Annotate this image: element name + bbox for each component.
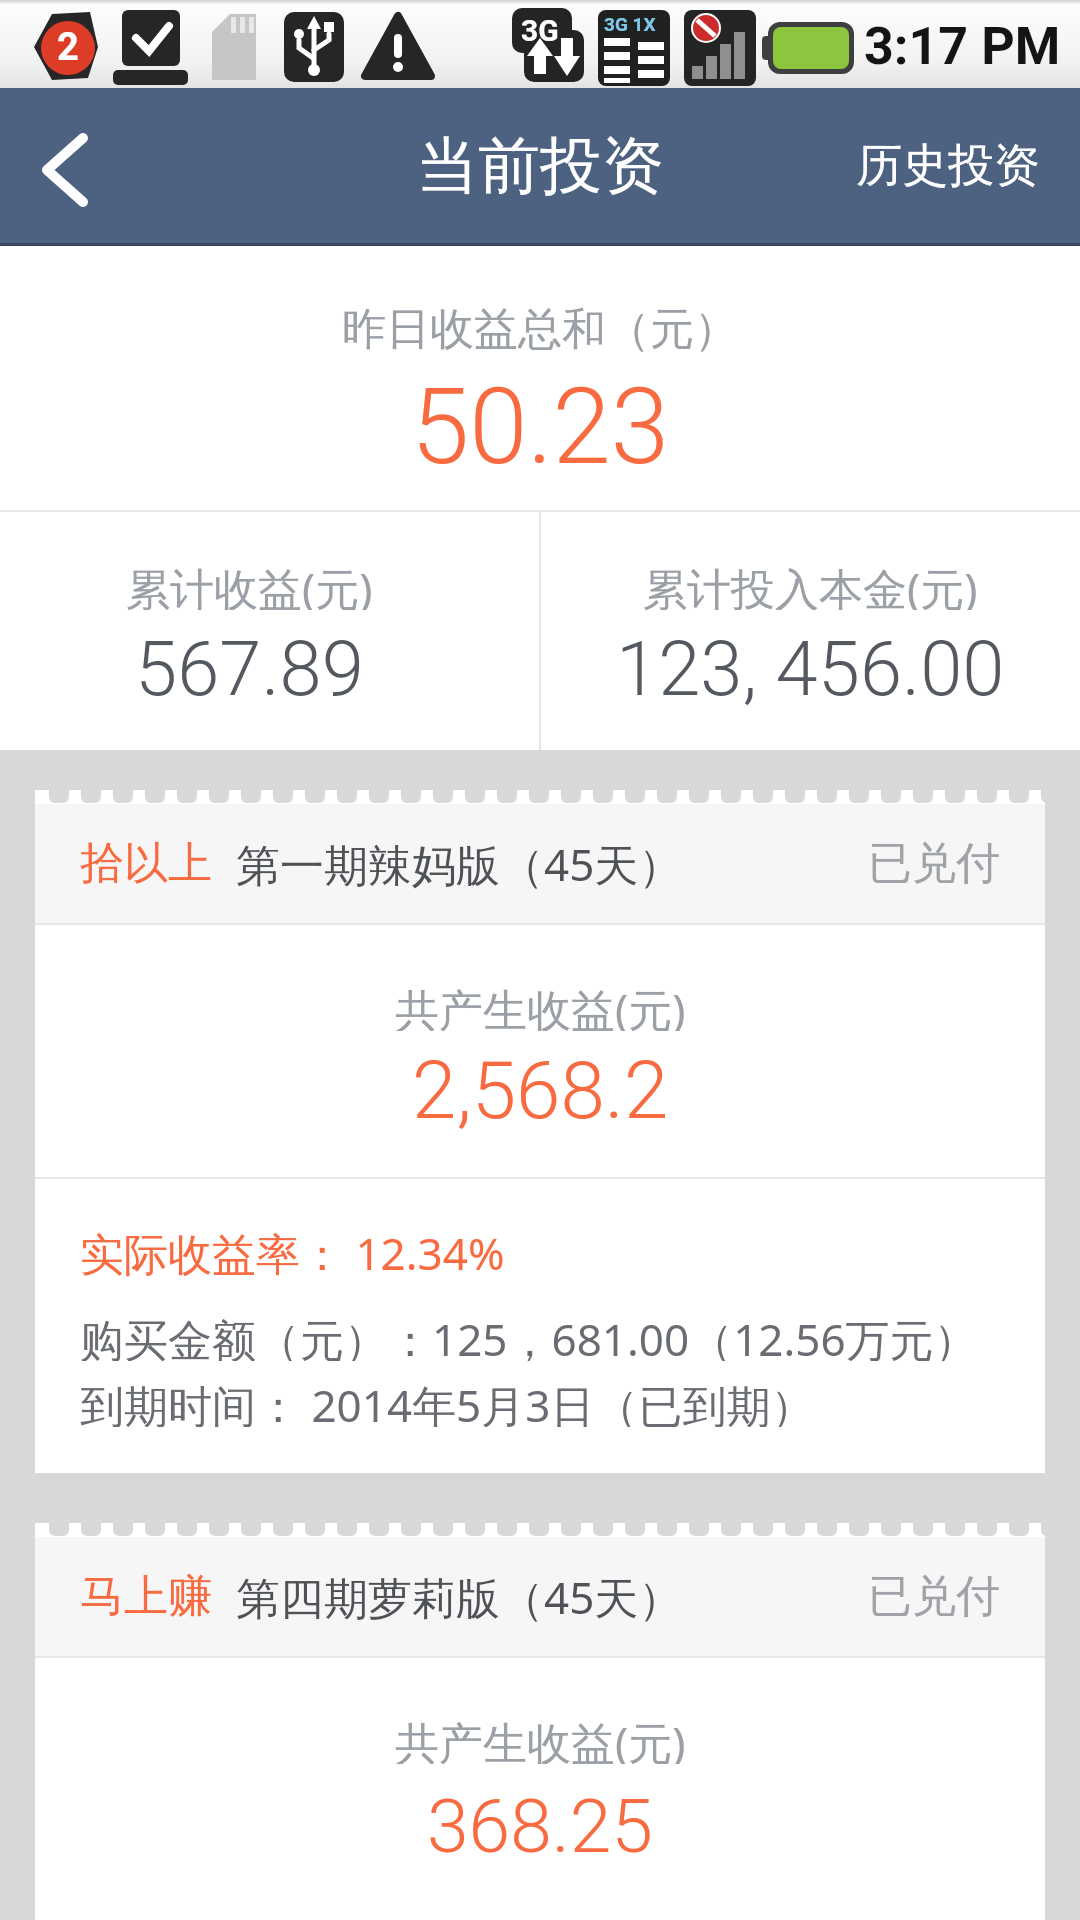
staticText: 50.23 — [411, 366, 670, 488]
staticText: 共产生收益(元) — [395, 979, 686, 1031]
staticText: 第一期辣妈版（45天） — [236, 834, 683, 894]
staticText: 第四期萝莉版（45天） — [236, 1567, 683, 1627]
staticText: 累计收益(元) — [126, 558, 373, 610]
staticText: 昨日收益总和（元） — [342, 302, 738, 354]
staticText: 2 — [57, 25, 79, 70]
button[interactable]: 马上赚 — [35, 1537, 1045, 1920]
staticText: 已兑付 — [868, 1569, 1000, 1624]
staticText: 3G — [521, 13, 559, 48]
staticText: 123, 456.00 — [616, 624, 1005, 710]
staticText: 拾以上 — [80, 836, 212, 891]
button[interactable]: 拾以上 — [35, 804, 1045, 1473]
staticText: 共产生收益(元) — [395, 1712, 686, 1764]
staticText: 到期时间： 2014年5月3日（已到期） — [80, 1375, 815, 1427]
staticText: 567.89 — [135, 624, 364, 710]
staticText: 实际收益率： 12.34% — [80, 1223, 505, 1279]
staticText: 2,568.2 — [412, 1044, 669, 1138]
staticText: 购买金额（元）：125，681.00（12.56万元） — [80, 1309, 978, 1361]
staticText: 368.25 — [427, 1782, 653, 1870]
button[interactable] — [0, 88, 130, 243]
button[interactable]: 历史投资 — [856, 88, 1040, 243]
staticText: 3G 1X — [604, 13, 656, 35]
staticText: 马上赚 — [80, 1569, 212, 1624]
staticText: 历史投资 — [856, 137, 1040, 195]
staticText: 累计投入本金(元) — [643, 558, 978, 610]
staticText: 3:17 PM — [864, 16, 1061, 77]
staticText: 当前投资 — [416, 127, 664, 205]
staticText: 已兑付 — [868, 836, 1000, 891]
